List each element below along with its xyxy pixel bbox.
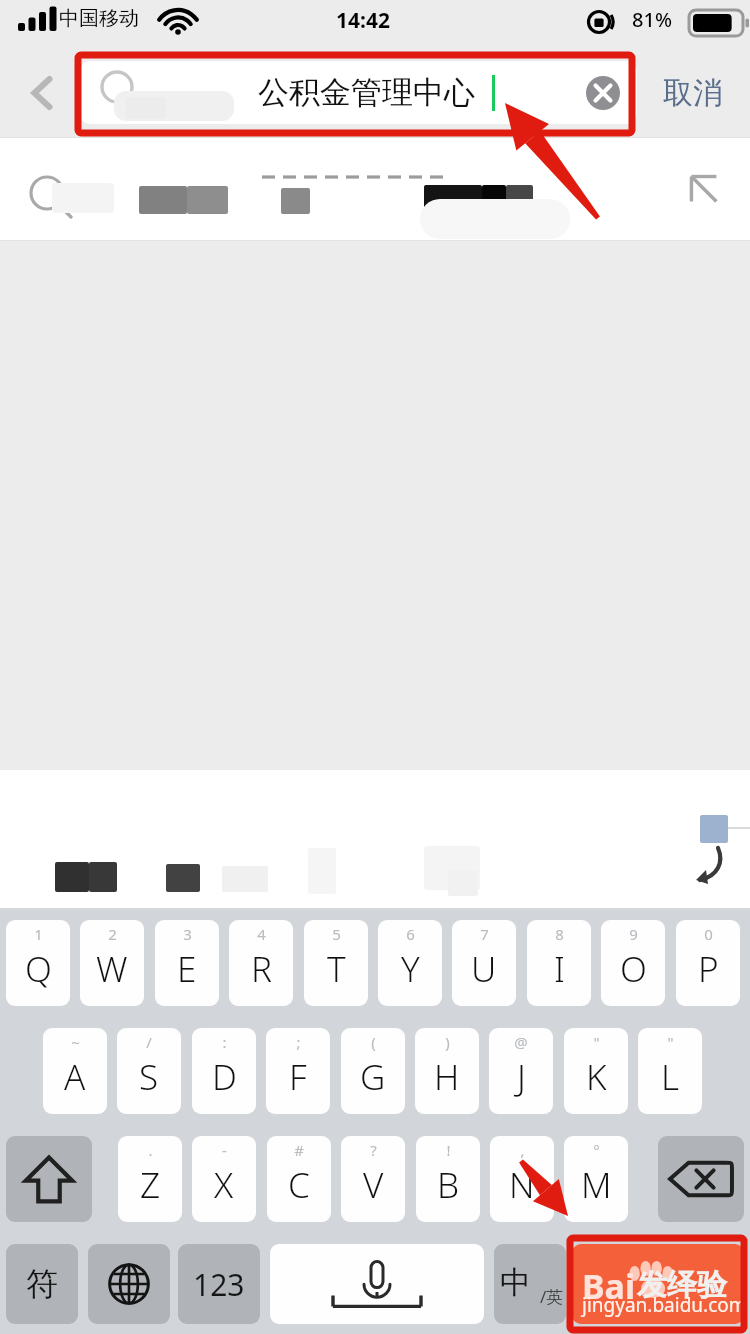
staticText: L [661, 1053, 680, 1101]
button[interactable]: Space, voice input [270, 1244, 484, 1324]
button[interactable]: - [192, 1136, 256, 1222]
staticText: jingyan.baidu.com [582, 1292, 744, 1318]
button[interactable]: ) [415, 1028, 479, 1114]
staticText: 公积金管理中心 [258, 73, 475, 112]
staticText: ( [371, 1032, 376, 1052]
staticText: . [148, 1140, 153, 1160]
staticText: S [139, 1053, 159, 1101]
button[interactable]: Chinese English toggle [494, 1244, 566, 1324]
button[interactable]: / [117, 1028, 181, 1114]
staticText: 0 [704, 924, 713, 944]
staticText: G [360, 1053, 386, 1101]
staticText: H [434, 1053, 460, 1101]
staticText: Bai [582, 1263, 636, 1309]
staticText: N [509, 1161, 535, 1209]
staticText: W [96, 945, 128, 993]
button[interactable]: 5 [304, 920, 368, 1006]
staticText: 7 [480, 924, 489, 944]
staticText: , [520, 1140, 525, 1160]
staticText: A [64, 1053, 86, 1101]
staticText: E [177, 945, 197, 993]
button[interactable]: " [564, 1028, 628, 1114]
staticText: 81% [632, 6, 672, 33]
button[interactable]: Insert suggestion [680, 163, 732, 215]
button[interactable]: ! [416, 1136, 480, 1222]
staticText: ; [296, 1032, 301, 1052]
button[interactable]: 取消 [648, 64, 738, 122]
staticText: I [554, 945, 565, 993]
staticText: 9 [629, 924, 638, 944]
staticText: T [327, 945, 346, 993]
staticText: M [581, 1161, 612, 1209]
staticText: 5 [332, 924, 341, 944]
button[interactable]: 9 [601, 920, 665, 1006]
staticText: ? [370, 1140, 377, 1160]
staticText: " [593, 1032, 600, 1052]
button[interactable]: Insert suggestion [0, 137, 750, 241]
button[interactable]: 符 [6, 1244, 78, 1324]
button[interactable]: 8 [527, 920, 591, 1006]
button[interactable]: 2 [80, 920, 144, 1006]
staticText: R [251, 945, 272, 993]
staticText: - [222, 1140, 227, 1160]
staticText: 1 [34, 924, 43, 944]
button[interactable]: ~ [43, 1028, 107, 1114]
button[interactable]: 0 [676, 920, 740, 1006]
staticText: C [288, 1161, 310, 1209]
staticText: 3 [183, 924, 192, 944]
button[interactable]: Enter [572, 1244, 744, 1324]
staticText: 8 [555, 924, 564, 944]
staticText: Z [140, 1161, 161, 1209]
button[interactable]: # [267, 1136, 331, 1222]
button[interactable]: 123 [178, 1244, 260, 1324]
button[interactable]: Delete [658, 1136, 744, 1222]
staticText: 中 [500, 1263, 531, 1302]
button[interactable]: Switch keyboard language [88, 1244, 170, 1324]
staticText: / [146, 1032, 152, 1052]
staticText: : [222, 1032, 227, 1052]
staticText: Y [401, 945, 420, 993]
staticText: ) [445, 1032, 450, 1052]
button[interactable]: ( [341, 1028, 405, 1114]
staticText: 6 [406, 924, 415, 944]
staticText: ° [593, 1140, 600, 1160]
staticText: # [294, 1140, 304, 1160]
staticText: " [667, 1032, 674, 1052]
button[interactable]: 1 [6, 920, 70, 1006]
button[interactable]: , [490, 1136, 554, 1222]
staticText: 123 [193, 1264, 245, 1305]
staticText: 符 [26, 1264, 58, 1304]
staticText: J [517, 1053, 526, 1101]
button[interactable]: . [118, 1136, 182, 1222]
staticText: F [289, 1053, 307, 1101]
button[interactable]: ° [564, 1136, 628, 1222]
staticText: /英 [540, 1285, 564, 1308]
staticText: 2 [108, 924, 117, 944]
button[interactable]: Clear text [581, 71, 625, 115]
button[interactable]: 3 [155, 920, 219, 1006]
staticText: @ [514, 1032, 528, 1052]
staticText: 取消 [663, 74, 723, 112]
staticText: D [212, 1053, 237, 1101]
staticText: U [471, 945, 497, 993]
button[interactable]: @ [489, 1028, 553, 1114]
button[interactable]: ; [266, 1028, 330, 1114]
button[interactable]: Shift [6, 1136, 92, 1222]
staticText: 发绎验 [637, 1266, 727, 1304]
button[interactable]: : [192, 1028, 256, 1114]
staticText: 4 [257, 924, 266, 944]
button[interactable]: ? [341, 1136, 405, 1222]
staticText: ~ [71, 1032, 80, 1052]
staticText: Q [25, 945, 52, 993]
staticText: X [214, 1161, 234, 1209]
button[interactable]: " [638, 1028, 702, 1114]
button[interactable]: 4 [229, 920, 293, 1006]
staticText: V [363, 1161, 384, 1209]
staticText: 14:42 [336, 6, 390, 35]
button[interactable]: 7 [452, 920, 516, 1006]
staticText: P [698, 945, 719, 993]
button[interactable]: Back [16, 66, 70, 120]
staticText: ! [446, 1140, 451, 1160]
button[interactable]: 公积金管理中心 [80, 61, 637, 124]
button[interactable]: 6 [378, 920, 442, 1006]
